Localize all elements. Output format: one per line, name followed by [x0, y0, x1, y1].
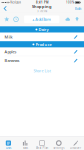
- button[interactable]: Stats: [17, 137, 34, 150]
- staticText: Settings: [53, 146, 64, 150]
- staticText: Dairy: [38, 27, 48, 32]
- staticText: Apples: [5, 49, 17, 54]
- staticText: Stats: [23, 146, 28, 150]
- staticText: Discover: [70, 146, 81, 150]
- button[interactable]: Recents: [14, 15, 22, 23]
- staticText: 100%: [66, 1, 75, 4]
- staticText: Milk: [5, 34, 13, 40]
- staticText: +: [32, 17, 34, 22]
- staticText: Add Item: [35, 17, 51, 22]
- button[interactable]: Settings: [50, 137, 67, 150]
- staticText: Produce: [35, 42, 51, 47]
- button[interactable]: Milk: [0, 33, 84, 41]
- button[interactable]: Sync: [61, 15, 70, 23]
- staticText: Share List: [33, 68, 50, 73]
- staticText: 3 items: [37, 10, 47, 13]
- button[interactable]: +: [24, 15, 59, 23]
- button[interactable]: Lists: [0, 137, 17, 150]
- staticText: Verizon: [9, 1, 21, 4]
- staticText: Bananas: [5, 58, 20, 63]
- staticText: 8:41 PM: [36, 1, 48, 4]
- staticText: Meal Plan: [35, 146, 48, 150]
- button[interactable]: Share List: [0, 65, 84, 77]
- staticText: Lists: [6, 146, 11, 150]
- button[interactable]: Favorites: [0, 15, 14, 23]
- staticText: Edit: [75, 6, 81, 11]
- button[interactable]: Rewards: [70, 16, 84, 23]
- button[interactable]: Edit: [72, 5, 84, 12]
- staticText: Shopping: [32, 4, 52, 9]
- button[interactable]: Bananas: [0, 56, 84, 65]
- button[interactable]: Discover: [67, 137, 84, 150]
- button[interactable]: Apples: [0, 48, 84, 56]
- button[interactable]: Back: [0, 5, 10, 12]
- button[interactable]: Meal Plan: [34, 137, 50, 150]
